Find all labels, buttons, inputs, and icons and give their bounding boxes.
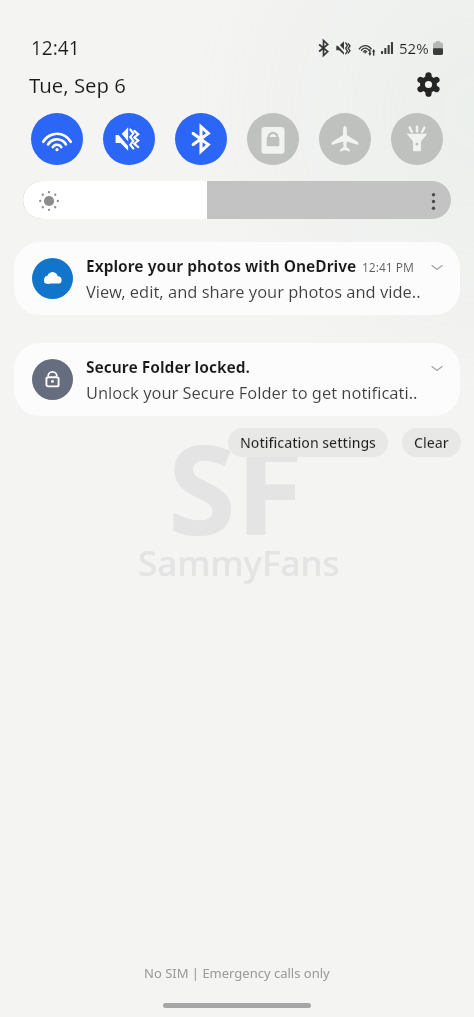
button[interactable]: Expand: [424, 355, 450, 381]
button[interactable]: Brightness: [23, 181, 451, 219]
staticText: 52%: [399, 38, 429, 58]
staticText: Notification settings: [240, 433, 376, 452]
button[interactable]: Bluetooth: [175, 113, 227, 165]
staticText: Explore your photos with OneDrive: [86, 255, 357, 276]
staticText: Tue, Sep 6: [29, 71, 126, 99]
staticText: Unlock your Secure Folder to get notific…: [86, 381, 418, 403]
staticText: 12:41: [31, 35, 80, 61]
button[interactable]: Expand: [424, 254, 450, 280]
staticText: Clear: [414, 433, 449, 452]
staticText: View, edit, and share your photos and vi…: [86, 280, 421, 302]
button[interactable]: Lock now: [247, 113, 299, 165]
staticText: 12:41 PM: [362, 259, 414, 275]
button[interactable]: Explore your photos with OneDrive: [14, 242, 460, 315]
button[interactable]: Wi-Fi: [31, 113, 83, 165]
staticText: SammyFans: [138, 539, 340, 587]
button[interactable]: Settings: [411, 67, 445, 101]
button[interactable]: Clear: [402, 428, 461, 457]
button[interactable]: Notification settings: [228, 428, 388, 457]
button[interactable]: Flashlight: [391, 113, 443, 165]
button[interactable]: Mute: [103, 113, 155, 165]
button[interactable]: Airplane mode: [319, 113, 371, 165]
button[interactable]: Secure Folder locked.: [14, 343, 460, 416]
staticText: Secure Folder locked.: [86, 356, 250, 377]
staticText: No SIM | Emergency calls only: [144, 964, 330, 982]
staticText: SF: [168, 404, 304, 572]
